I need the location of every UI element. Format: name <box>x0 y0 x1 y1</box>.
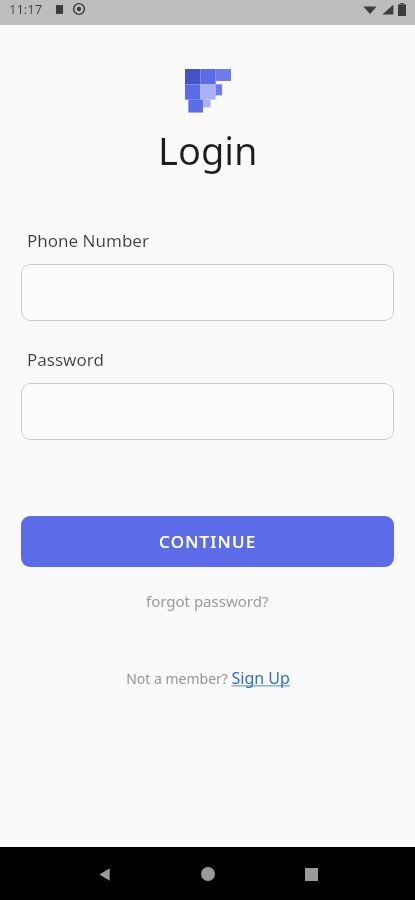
button[interactable] <box>21 264 394 321</box>
staticText: CONTINUE <box>159 530 257 553</box>
button[interactable]: Not a member? Sign Up <box>120 664 296 692</box>
staticText: forgot password? <box>146 591 269 611</box>
button[interactable]: Recent apps <box>290 853 332 895</box>
button[interactable]: Back <box>84 853 126 895</box>
button[interactable]: forgot password? <box>138 587 277 615</box>
staticText: Not a member? Sign Up <box>126 667 290 689</box>
button[interactable]: CONTINUE <box>21 516 394 567</box>
staticText: Login <box>158 124 258 176</box>
button[interactable] <box>21 383 394 440</box>
staticText: 11:17 <box>9 0 43 18</box>
staticText: Password <box>27 348 104 371</box>
button[interactable]: Home <box>187 853 229 895</box>
staticText: Phone Number <box>27 229 149 252</box>
